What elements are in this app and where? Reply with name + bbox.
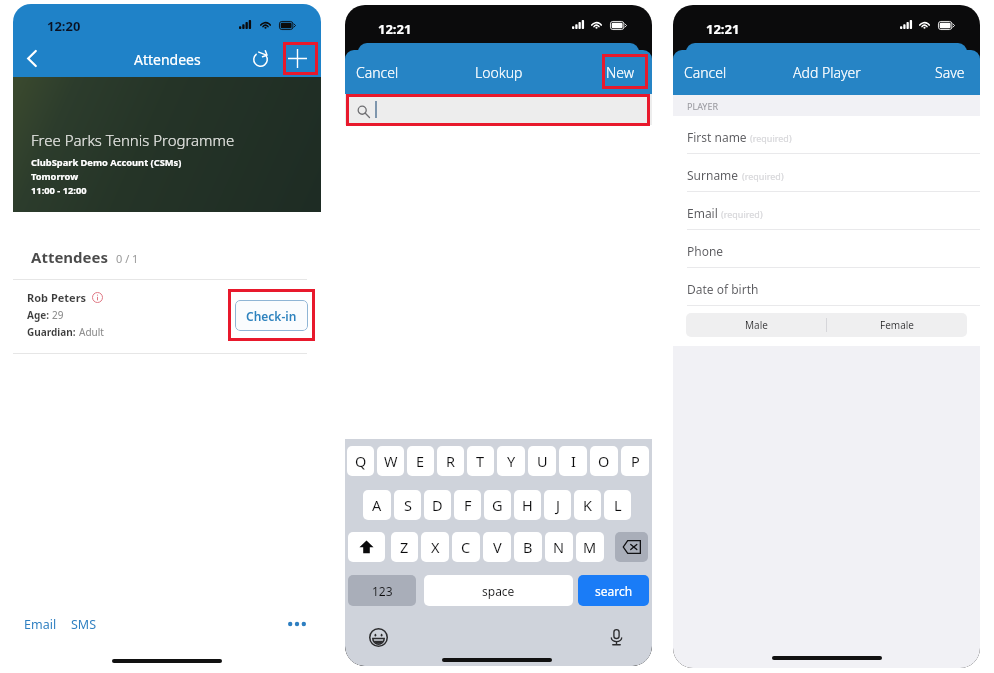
button[interactable]: Backspace bbox=[615, 532, 648, 562]
staticText: space bbox=[482, 583, 515, 599]
staticText: Adult bbox=[79, 325, 104, 339]
button[interactable]: M bbox=[576, 532, 604, 562]
button[interactable]: Q bbox=[347, 446, 374, 476]
staticText: X bbox=[431, 537, 440, 557]
staticText: D bbox=[432, 495, 443, 515]
button[interactable]: S bbox=[394, 490, 421, 520]
staticText: 123 bbox=[372, 583, 393, 599]
staticText: I bbox=[571, 451, 576, 471]
button[interactable]: Add attendee bbox=[282, 43, 312, 73]
staticText: Y bbox=[507, 451, 516, 471]
button[interactable]: search bbox=[578, 575, 649, 606]
button[interactable]: L bbox=[604, 490, 631, 520]
staticText: L bbox=[614, 495, 622, 515]
staticText: Q bbox=[355, 451, 367, 471]
staticText: Add Player bbox=[793, 63, 861, 82]
button[interactable]: Female bbox=[827, 313, 967, 337]
staticText: N bbox=[553, 537, 565, 557]
button[interactable]: Cancel bbox=[356, 63, 399, 82]
button[interactable]: Cancel bbox=[684, 63, 727, 82]
button[interactable]: V bbox=[483, 532, 511, 562]
button[interactable]: K bbox=[574, 490, 601, 520]
staticText: G bbox=[492, 495, 503, 515]
staticText: First name bbox=[687, 129, 747, 145]
button[interactable]: X bbox=[421, 532, 449, 562]
staticText: J bbox=[556, 495, 560, 515]
button[interactable]: G bbox=[484, 490, 511, 520]
staticText: 12:20 bbox=[47, 17, 81, 35]
button[interactable]: I bbox=[559, 446, 587, 476]
staticText: Z bbox=[400, 537, 409, 557]
button[interactable]: D bbox=[424, 490, 451, 520]
button[interactable]: Save bbox=[935, 63, 965, 82]
button[interactable]: W bbox=[377, 446, 404, 476]
staticText: 12:21 bbox=[378, 20, 412, 38]
button[interactable]: New bbox=[606, 63, 634, 82]
button[interactable]: C bbox=[452, 532, 480, 562]
staticText: Male bbox=[745, 318, 768, 332]
button[interactable]: T bbox=[467, 446, 494, 476]
staticText: R bbox=[446, 451, 456, 471]
staticText: (required) bbox=[742, 170, 784, 182]
button[interactable]: J bbox=[544, 490, 571, 520]
staticText: A bbox=[372, 495, 382, 515]
staticText: E bbox=[416, 451, 425, 471]
staticText: Date of birth bbox=[687, 281, 759, 297]
button[interactable]: Phone bbox=[687, 232, 980, 270]
staticText: S bbox=[404, 495, 412, 515]
button[interactable]: SMS bbox=[71, 616, 97, 633]
button[interactable]: Shift bbox=[348, 532, 385, 562]
staticText: Age: bbox=[27, 308, 52, 322]
staticText: O bbox=[598, 451, 610, 471]
button[interactable]: Emoji bbox=[367, 626, 389, 648]
button[interactable]: space bbox=[424, 575, 573, 606]
staticText: 0 / 1 bbox=[116, 251, 139, 266]
staticText: M bbox=[583, 537, 597, 557]
staticText: Lookup bbox=[475, 63, 523, 82]
button[interactable]: N bbox=[545, 532, 573, 562]
staticText: V bbox=[493, 537, 502, 557]
button[interactable]: Date of birth bbox=[687, 270, 980, 308]
button[interactable]: P bbox=[621, 446, 649, 476]
staticText: F bbox=[464, 495, 472, 515]
button[interactable]: Dictate bbox=[605, 626, 627, 648]
staticText: search bbox=[595, 583, 633, 599]
button[interactable]: Y bbox=[497, 446, 525, 476]
staticText: ClubSpark Demo Account (CSMs) bbox=[31, 156, 182, 169]
button[interactable]: U bbox=[528, 446, 556, 476]
button[interactable]: E bbox=[407, 446, 434, 476]
button[interactable]: Z bbox=[391, 532, 418, 562]
button[interactable]: Surname bbox=[687, 156, 980, 194]
button[interactable]: 123 bbox=[348, 575, 416, 606]
staticText: Rob Peters bbox=[27, 290, 87, 305]
staticText: Tomorrow bbox=[31, 170, 79, 183]
button[interactable]: Back bbox=[17, 43, 47, 73]
button[interactable]: Refresh bbox=[245, 43, 275, 73]
button[interactable]: First name bbox=[687, 118, 980, 156]
button[interactable]: Email bbox=[24, 616, 57, 633]
staticText: PLAYER bbox=[687, 100, 719, 112]
button[interactable]: R bbox=[437, 446, 464, 476]
staticText: Phone bbox=[687, 243, 724, 259]
staticText: Free Parks Tennis Programme bbox=[31, 130, 235, 150]
staticText: B bbox=[523, 537, 533, 557]
staticText: 29 bbox=[52, 308, 64, 322]
staticText: Check-in bbox=[246, 308, 297, 324]
staticText: T bbox=[476, 451, 485, 471]
staticText: Guardian: bbox=[27, 325, 79, 339]
button[interactable]: F bbox=[454, 490, 481, 520]
button[interactable]: O bbox=[590, 446, 618, 476]
button[interactable]: Male bbox=[686, 313, 826, 337]
button[interactable]: H bbox=[514, 490, 541, 520]
button[interactable]: More options bbox=[285, 612, 309, 636]
button[interactable]: B bbox=[514, 532, 542, 562]
staticText: 11:00 - 12:00 bbox=[31, 184, 87, 197]
button[interactable]: Check-in bbox=[235, 300, 308, 331]
staticText: Attendees bbox=[134, 50, 201, 69]
staticText: U bbox=[537, 451, 548, 471]
staticText: W bbox=[384, 451, 398, 471]
button[interactable]: Email bbox=[687, 194, 980, 232]
staticText: K bbox=[583, 495, 592, 515]
staticText: Female bbox=[880, 318, 915, 332]
button[interactable]: A bbox=[363, 490, 391, 520]
